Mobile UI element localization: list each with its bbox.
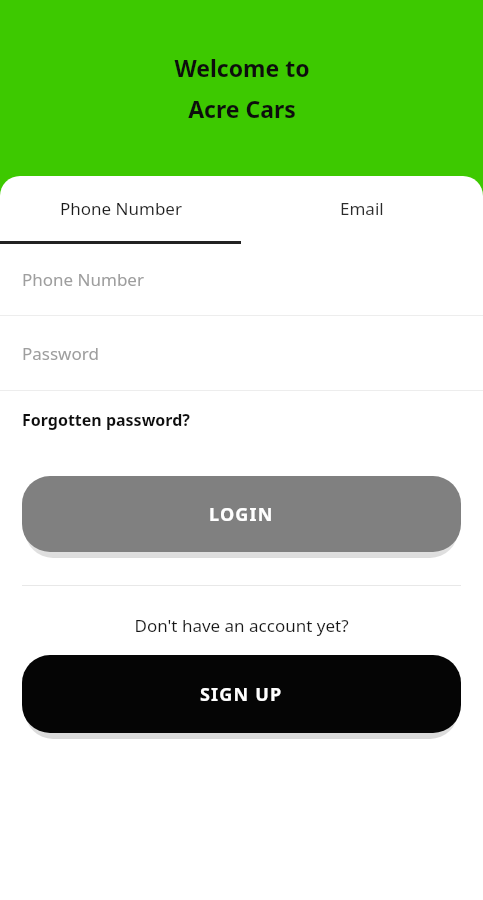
button[interactable]: Forgotten password? — [22, 409, 190, 431]
button[interactable]: LOGIN — [22, 476, 461, 552]
button[interactable]: Phone Number — [0, 176, 241, 241]
staticText: Welcome to — [174, 52, 310, 83]
staticText: Phone Number — [60, 197, 182, 220]
button[interactable]: SIGN UP — [22, 655, 461, 733]
staticText: Password — [22, 342, 99, 365]
staticText: LOGIN — [209, 502, 274, 527]
staticText: SIGN UP — [200, 682, 283, 707]
button[interactable]: Password — [0, 316, 483, 390]
staticText: Forgotten password? — [22, 409, 190, 431]
staticText: Don't have an account yet? — [134, 614, 349, 637]
staticText: Acre Cars — [188, 93, 296, 124]
staticText: Phone Number — [22, 268, 144, 291]
staticText: Email — [340, 197, 384, 220]
button[interactable]: Email — [241, 176, 483, 241]
button[interactable]: Phone Number — [0, 244, 483, 315]
